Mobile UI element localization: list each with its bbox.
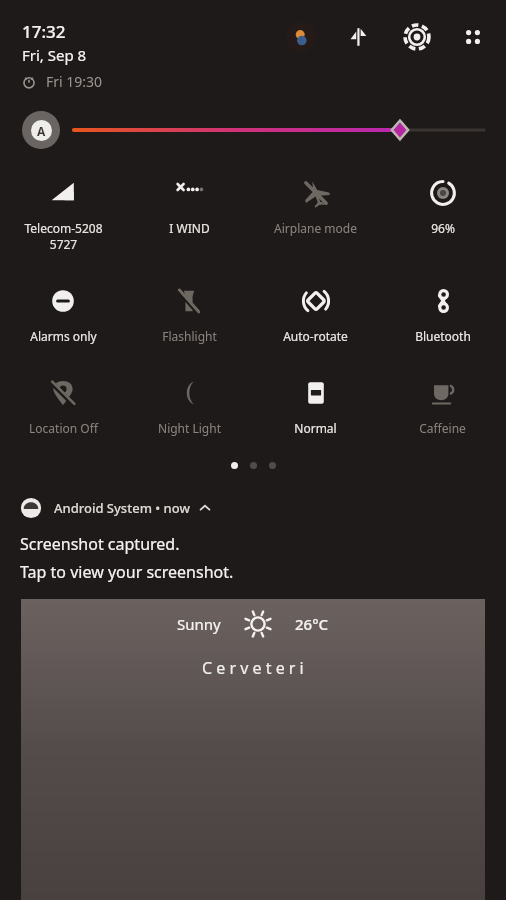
staticText: Alarms only [30, 328, 97, 344]
button[interactable]: Settings [400, 20, 434, 54]
staticText: I WIND [169, 220, 210, 236]
button[interactable]: Airplane mode [252, 174, 379, 240]
staticText: C e r v e t e r i [202, 657, 304, 679]
button[interactable]: Bluetooth [379, 282, 506, 348]
staticText: Fri, Sep 8 [22, 45, 87, 65]
button[interactable]: Auto-rotate [252, 282, 379, 348]
staticText: Bluetooth [415, 328, 471, 344]
staticText: Sunny [177, 614, 221, 634]
button[interactable]: Normal [252, 374, 379, 440]
button[interactable]: User profile [286, 22, 316, 52]
staticText: Normal [294, 420, 337, 436]
button[interactable]: Alarms only [0, 282, 126, 348]
button[interactable]: I WIND [126, 174, 252, 240]
button[interactable] [74, 110, 484, 150]
staticText: Night Light [158, 420, 221, 436]
staticText: Screenshot captured. [20, 533, 180, 555]
button[interactable]: Location Off [0, 374, 126, 440]
button[interactable]: Data usage [342, 21, 374, 53]
button[interactable]: Screenshot preview [21, 599, 485, 900]
button[interactable]: Telecom-5208 5727 [0, 174, 126, 256]
button[interactable]: Auto brightness [22, 111, 60, 149]
staticText: Location Off [29, 420, 98, 436]
button[interactable]: Flashlight [126, 282, 252, 348]
button[interactable]: Night Light [126, 374, 252, 440]
button[interactable]: Caffeine [379, 374, 506, 440]
staticText: Telecom-5208 5727 [24, 220, 103, 252]
button[interactable]: Screenshot captured. [20, 533, 486, 583]
button[interactable]: Android System • now [20, 497, 486, 519]
staticText: Fri 19:30 [46, 72, 103, 91]
staticText: Airplane mode [274, 220, 357, 236]
button[interactable]: Apps [458, 22, 488, 52]
staticText: A [37, 123, 46, 139]
staticText: Auto-rotate [283, 328, 348, 344]
staticText: Android System • now [54, 499, 190, 517]
staticText: Flashlight [162, 328, 217, 344]
staticText: 17:32 [22, 20, 66, 43]
staticText: 26°C [295, 614, 329, 634]
staticText: Caffeine [419, 420, 466, 436]
staticText: 96% [431, 220, 455, 236]
staticText: Tap to view your screenshot. [20, 561, 234, 583]
button[interactable]: 96% [379, 174, 506, 240]
